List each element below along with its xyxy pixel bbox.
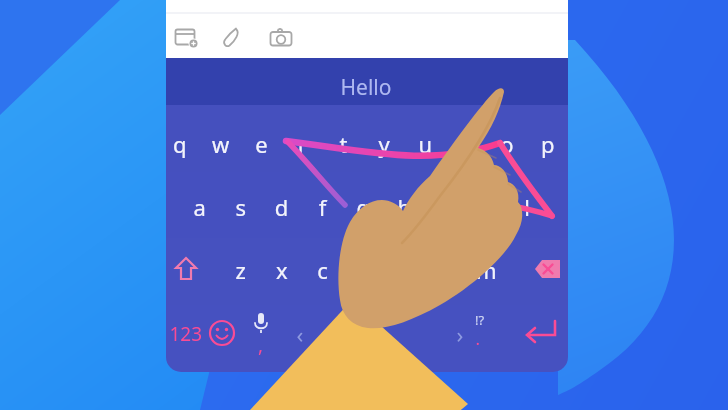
button[interactable]: Swipe keyboard preview <box>0 0 728 410</box>
